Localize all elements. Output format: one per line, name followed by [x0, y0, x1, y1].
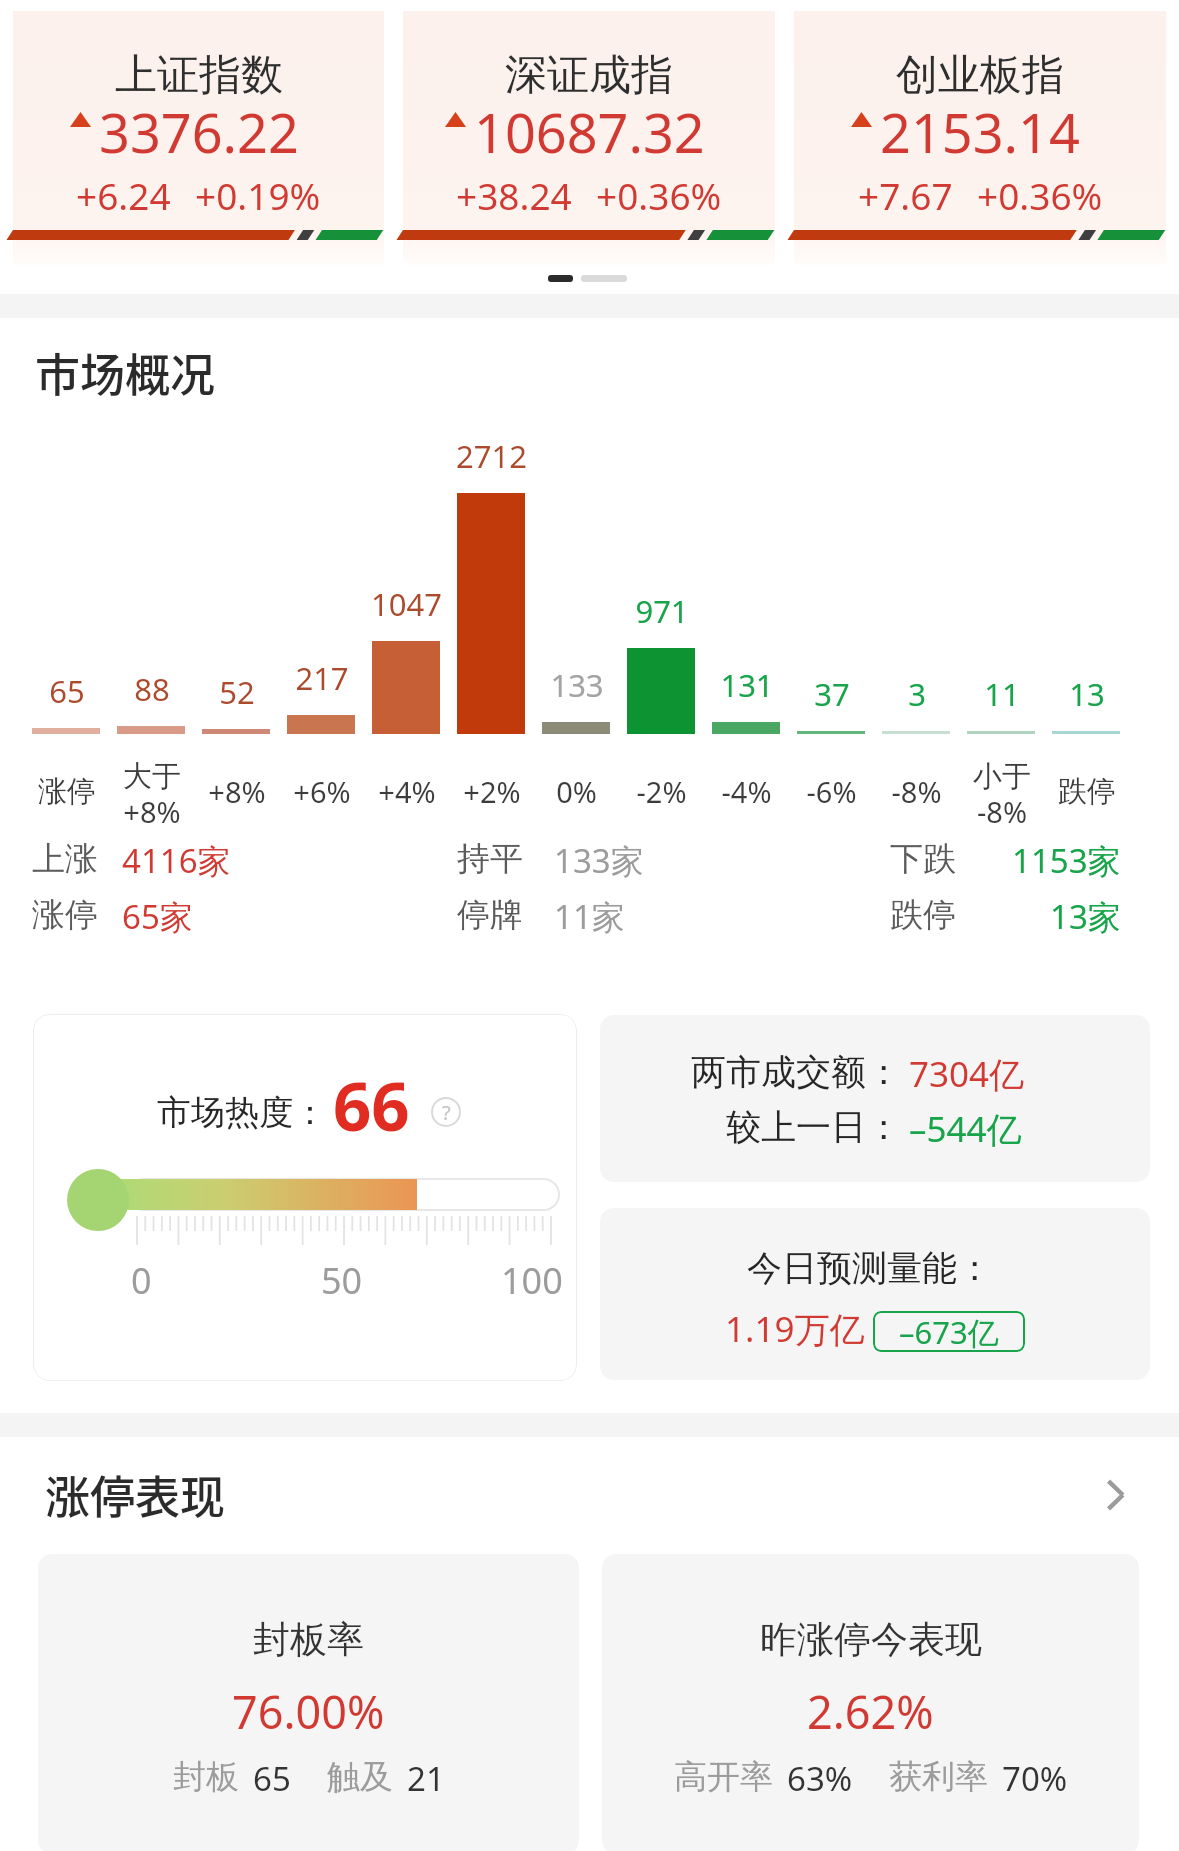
staticText: 持平 [457, 838, 523, 880]
staticText: 封板 [173, 1756, 239, 1798]
staticText: 上涨 [32, 838, 98, 880]
button[interactable]: 深证成指 [403, 11, 775, 265]
staticText: 下跌 [890, 838, 956, 880]
staticText: 37 [814, 673, 850, 715]
staticText: +6.24 [76, 170, 171, 220]
other: 说明 [431, 1097, 461, 1127]
staticText: 涨停表现 [45, 1462, 226, 1527]
staticText: 3 [908, 673, 926, 715]
staticText: 创业板指 [896, 49, 1064, 102]
staticText: +4% [378, 772, 436, 811]
staticText: +0.19% [195, 170, 321, 220]
staticText: 今日预测量能： [747, 1246, 992, 1290]
button[interactable]: 市场热度： [33, 1014, 577, 1381]
staticText: 21 [407, 1756, 445, 1801]
staticText: 2712 [456, 435, 527, 477]
staticText: -2% [636, 772, 687, 811]
staticText: 停牌 [457, 894, 523, 936]
staticText: 涨停 [32, 894, 98, 936]
staticText: 13 [1069, 673, 1105, 715]
staticText: 两市成交额： [691, 1050, 901, 1094]
staticText: 涨停 [38, 773, 96, 810]
staticText: 65家 [122, 894, 193, 939]
staticText: 133 [550, 664, 604, 706]
button[interactable]: 两市成交额： [600, 1015, 1150, 1182]
staticText: 70% [1002, 1756, 1068, 1801]
staticText: –544亿 [909, 1105, 1022, 1153]
staticText: +0.36% [977, 170, 1103, 220]
staticText: 1047 [371, 583, 442, 625]
button[interactable]: 昨涨停今表现 [602, 1554, 1139, 1851]
staticText: 深证成指 [505, 49, 673, 102]
staticText: 133家 [554, 838, 644, 883]
staticText: 11 [984, 673, 1020, 715]
staticText: +7.67 [858, 170, 953, 220]
staticText: 66 [333, 1059, 410, 1150]
staticText: 76.00% [232, 1681, 385, 1742]
staticText: 跌停 [890, 894, 956, 936]
staticText: 高开率 [674, 1756, 773, 1798]
staticText: +38.24 [456, 170, 572, 220]
staticText: 上证指数 [115, 49, 283, 102]
staticText: 市场热度： [157, 1091, 327, 1134]
staticText: 100 [501, 1256, 563, 1305]
staticText: -4% [721, 772, 772, 811]
staticText: 971 [635, 590, 689, 632]
button[interactable]: 创业板指 [794, 11, 1166, 265]
staticText: +0.36% [596, 170, 722, 220]
button[interactable]: 封板率 [38, 1554, 579, 1851]
staticText: 0% [556, 772, 597, 811]
staticText: 65 [49, 670, 85, 712]
staticText: 3376.22 [99, 95, 299, 169]
staticText: 1.19万亿 [725, 1305, 865, 1353]
staticText: 4116家 [122, 838, 231, 883]
button[interactable]: 涨停表现 [0, 1447, 1179, 1542]
staticText: 65 [253, 1756, 291, 1801]
staticText: +6% [293, 772, 351, 811]
other: 查看更多 [1095, 1472, 1141, 1518]
staticText: 大于 +8% [123, 758, 181, 824]
staticText: 获利率 [889, 1756, 988, 1798]
staticText: ? [442, 1099, 451, 1126]
staticText: 0 [131, 1256, 152, 1305]
staticText: 10687.32 [474, 95, 705, 169]
staticText: 封板率 [253, 1616, 364, 1663]
staticText: 市场概况 [35, 340, 216, 405]
staticText: 13家 [1050, 894, 1121, 939]
staticText: 昨涨停今表现 [760, 1616, 982, 1663]
staticText: 触及 [327, 1756, 393, 1798]
staticText: +8% [208, 772, 266, 811]
staticText: +2% [463, 772, 521, 811]
staticText: 较上一日： [726, 1105, 901, 1149]
staticText: 52 [219, 671, 255, 713]
staticText: -8% [891, 772, 942, 811]
staticText: -6% [806, 772, 857, 811]
staticText: 131 [720, 664, 774, 706]
button[interactable]: 上证指数 [13, 11, 384, 265]
staticText: 1153家 [1012, 838, 1121, 883]
staticText: –673亿 [899, 1311, 999, 1352]
staticText: 88 [134, 668, 170, 710]
staticText: 2.62% [807, 1681, 934, 1742]
staticText: 7304亿 [909, 1050, 1025, 1098]
staticText: 2153.14 [880, 95, 1080, 169]
staticText: 11家 [554, 894, 625, 939]
button[interactable]: 今日预测量能： [600, 1208, 1150, 1380]
staticText: 50 [321, 1256, 363, 1305]
staticText: 跌停 [1058, 773, 1116, 810]
staticText: 217 [295, 657, 349, 699]
staticText: 小于 -8% [973, 758, 1031, 824]
staticText: 63% [787, 1756, 853, 1801]
